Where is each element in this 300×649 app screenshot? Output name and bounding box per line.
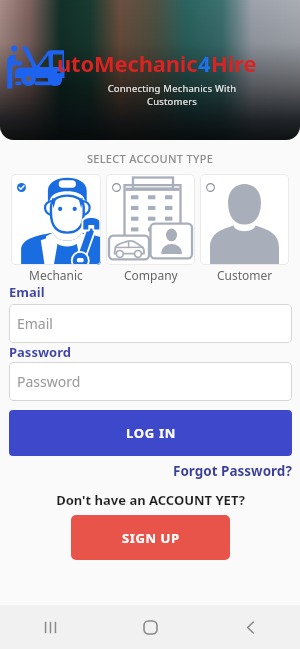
- staticText: Mechanic: [29, 267, 83, 283]
- staticText: Don't have an ACCOUNT YET?: [9, 491, 292, 509]
- staticText: Company: [124, 267, 178, 283]
- button[interactable]: Email: [17, 304, 292, 343]
- staticText: Password: [9, 343, 71, 361]
- staticText: Connecting Mechanics With Customers: [22, 82, 300, 108]
- staticText: LOG IN: [126, 424, 176, 442]
- button[interactable]: Recent apps: [0, 605, 100, 649]
- staticText: Email: [9, 283, 45, 301]
- button[interactable]: Home: [100, 605, 200, 649]
- staticText: SIGN UP: [122, 529, 180, 547]
- button[interactable]: Mechanic: [11, 174, 101, 283]
- staticText: Password: [17, 372, 81, 391]
- staticText: Hire: [211, 48, 257, 78]
- button[interactable]: Customer: [200, 174, 289, 283]
- staticText: utoMechanic: [57, 48, 198, 78]
- button[interactable]: Company: [106, 174, 195, 283]
- staticText: SELECT ACCOUNT TYPE: [0, 151, 300, 166]
- button[interactable]: Password: [17, 362, 292, 401]
- staticText: 4: [198, 48, 211, 78]
- button[interactable]: Back: [200, 605, 300, 649]
- staticText: Customer: [217, 267, 273, 283]
- staticText: Email: [17, 314, 53, 333]
- button[interactable]: LOG IN: [9, 410, 292, 456]
- button[interactable]: Forgot Password?: [173, 462, 292, 480]
- button[interactable]: SIGN UP: [71, 515, 230, 560]
